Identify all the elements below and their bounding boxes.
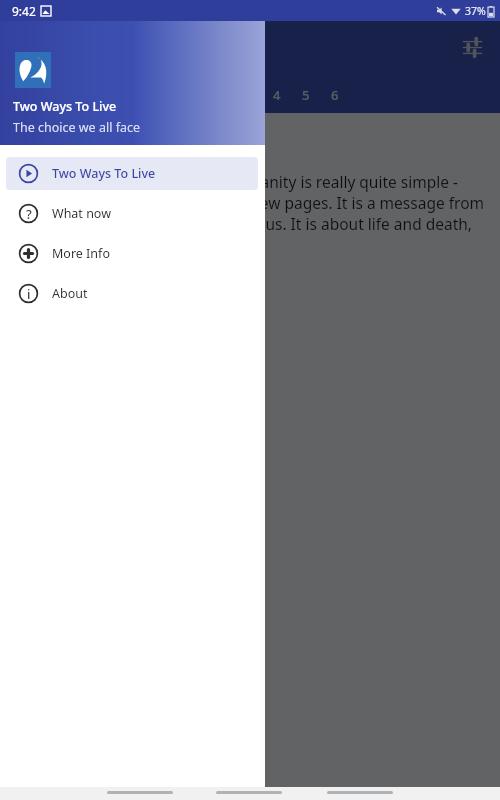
staticText: 5 (302, 86, 310, 104)
button[interactable]: 6 (320, 77, 349, 113)
staticText: ? (26, 205, 32, 223)
staticText: More Info (52, 245, 110, 262)
staticText: i (27, 285, 31, 303)
button[interactable]: 4 (262, 77, 291, 113)
button[interactable]: More Info (6, 237, 258, 270)
button[interactable]: Recents (327, 791, 393, 794)
staticText: God about Jesus. It is about life and de… (0, 213, 472, 234)
staticText: 37% (465, 4, 486, 18)
button[interactable]: ? (6, 197, 258, 230)
staticText: it can be summarised in a few pages. It … (0, 192, 484, 213)
button[interactable]: i (6, 277, 258, 310)
button[interactable]: 3 (233, 77, 262, 113)
button[interactable]: 2 (204, 77, 233, 113)
staticText: About (52, 285, 88, 302)
button[interactable]: Settings (455, 30, 489, 64)
button[interactable]: Home (216, 791, 282, 794)
button[interactable]: 1 (175, 77, 204, 113)
staticText: Two Ways To Live (13, 98, 117, 115)
staticText: What now (52, 205, 111, 222)
button[interactable]: Two Ways To Live (6, 157, 258, 190)
staticText: 9:42 (12, 3, 36, 19)
button[interactable]: 5 (291, 77, 320, 113)
button[interactable]: Back (107, 791, 173, 794)
staticText: The message of Christianity is really qu… (0, 171, 458, 192)
staticText: The choice we all face (13, 119, 140, 136)
staticText: Two Ways To Live (52, 165, 156, 182)
staticText: 6 (331, 86, 339, 104)
staticText: 4 (273, 86, 281, 104)
